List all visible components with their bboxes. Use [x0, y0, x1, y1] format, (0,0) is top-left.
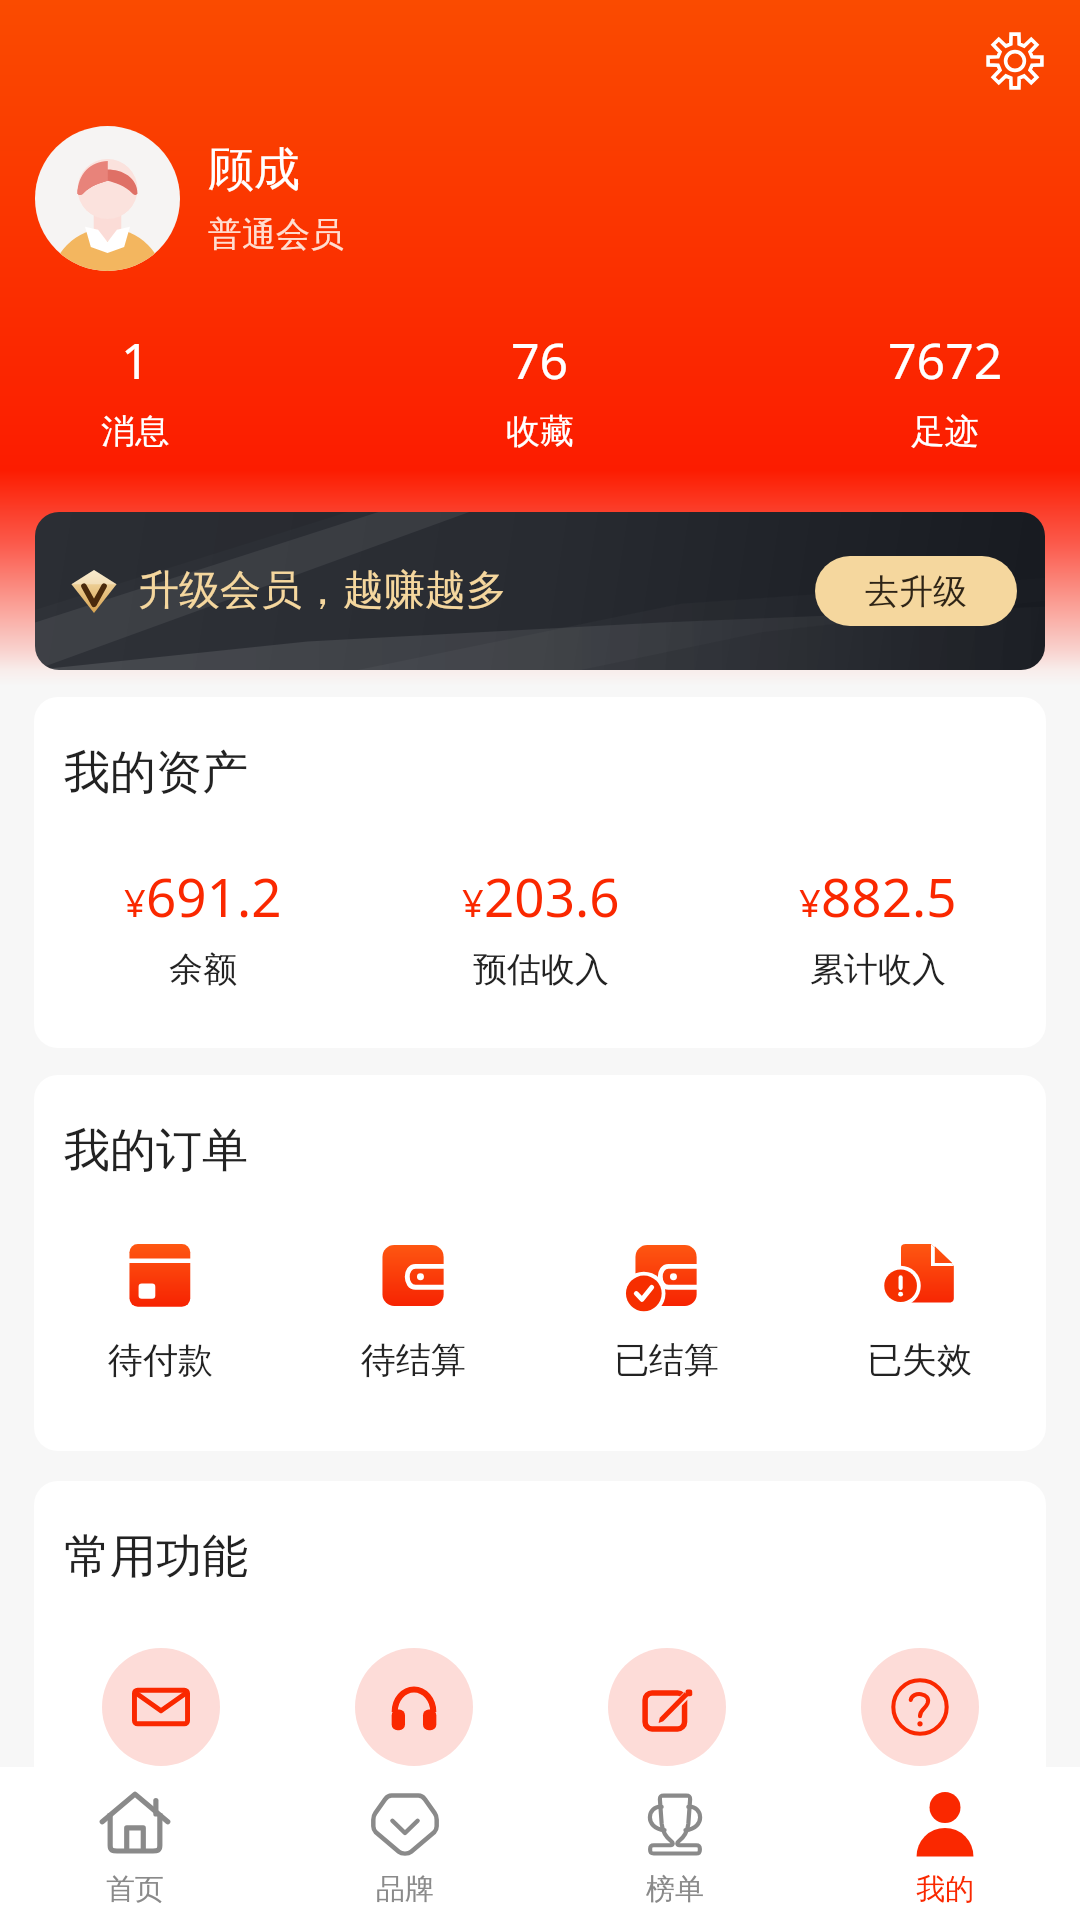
staticText: 我的订单	[64, 1122, 248, 1180]
button[interactable]: Help	[861, 1648, 979, 1766]
button[interactable]: 首页	[0, 1767, 270, 1920]
button[interactable]: ¥	[34, 860, 372, 991]
staticText: 升级会员，越赚越多	[138, 565, 507, 617]
button[interactable]: 7672	[810, 326, 1080, 453]
staticText: 预估收入	[473, 948, 609, 991]
staticText: 76	[511, 326, 569, 394]
staticText: 203.6	[484, 860, 620, 932]
staticText: 691.2	[146, 860, 282, 932]
button[interactable]: 待结算	[287, 1236, 540, 1382]
button[interactable]: Feedback	[608, 1648, 726, 1766]
staticText: 我的	[916, 1871, 974, 1908]
button[interactable]: Messages	[102, 1648, 220, 1766]
staticText: 882.5	[821, 860, 957, 932]
staticText: 去升级	[865, 570, 967, 613]
staticText: 品牌	[376, 1871, 434, 1908]
staticText: ¥	[124, 876, 146, 928]
button[interactable]: 升级会员，越赚越多	[35, 512, 1045, 670]
staticText: 榜单	[646, 1871, 704, 1908]
button[interactable]: ¥	[372, 860, 709, 991]
button[interactable]: 1	[0, 326, 270, 453]
staticText: 顾成	[208, 141, 300, 199]
staticText: 我的资产	[64, 744, 248, 802]
staticText: 消息	[101, 410, 169, 453]
button[interactable]: Settings	[957, 3, 1073, 119]
button[interactable]	[35, 126, 180, 271]
staticText: 足迹	[911, 410, 979, 453]
staticText: 常用功能	[64, 1528, 248, 1586]
button[interactable]: 去升级	[815, 556, 1017, 626]
button[interactable]: 我的	[810, 1767, 1080, 1920]
staticText: 已结算	[614, 1338, 719, 1382]
staticText: 待结算	[361, 1338, 466, 1382]
button[interactable]: ¥	[709, 860, 1046, 991]
staticText: ¥	[799, 876, 821, 928]
staticText: 余额	[169, 948, 237, 991]
button[interactable]: 已失效	[793, 1236, 1046, 1382]
button[interactable]: 76	[405, 326, 675, 453]
staticText: 待付款	[108, 1338, 213, 1382]
staticText: 收藏	[506, 410, 574, 453]
button[interactable]: 榜单	[540, 1767, 810, 1920]
staticText: 1	[121, 326, 150, 394]
staticText: ¥	[462, 876, 484, 928]
button[interactable]: Customer service	[355, 1648, 473, 1766]
button[interactable]: 待付款	[34, 1236, 287, 1382]
button[interactable]: 品牌	[270, 1767, 540, 1920]
staticText: 已失效	[867, 1338, 972, 1382]
staticText: 首页	[106, 1871, 164, 1908]
staticText: 7672	[888, 326, 1003, 394]
staticText: 累计收入	[810, 948, 946, 991]
staticText: 普通会员	[208, 213, 344, 256]
button[interactable]: 已结算	[540, 1236, 793, 1382]
